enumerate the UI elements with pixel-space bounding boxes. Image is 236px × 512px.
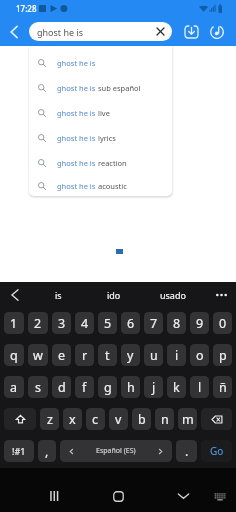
staticText: 2 xyxy=(34,315,42,332)
button[interactable]: ghost he is xyxy=(29,50,172,75)
staticText: e xyxy=(58,347,66,364)
button[interactable]: Previous suggestions xyxy=(2,282,28,307)
button[interactable]: k xyxy=(167,376,186,398)
button[interactable]: ghost he is xyxy=(29,175,172,196)
button[interactable]: i xyxy=(167,344,186,366)
button[interactable]: g xyxy=(98,376,117,398)
button[interactable]: p xyxy=(213,344,232,366)
button[interactable]: Clear xyxy=(148,22,172,41)
staticText: 5 xyxy=(104,315,112,332)
staticText: m xyxy=(182,411,194,428)
staticText: y xyxy=(127,347,134,364)
button[interactable]: !#1 xyxy=(4,440,34,462)
button[interactable]: r xyxy=(75,344,94,366)
button[interactable]: ghost he is xyxy=(29,150,172,175)
staticText: 6 xyxy=(127,315,135,332)
button[interactable]: Español (ES) xyxy=(60,440,172,462)
button[interactable]: 5 xyxy=(98,312,117,334)
staticText: s xyxy=(35,379,41,396)
button[interactable]: More options xyxy=(206,282,236,307)
staticText: lyrics xyxy=(96,133,116,143)
staticText: v xyxy=(115,411,122,428)
button[interactable]: t xyxy=(98,344,117,366)
button[interactable]: ghost he is xyxy=(29,125,172,150)
staticText: u xyxy=(150,347,158,364)
staticText: reaction xyxy=(96,158,127,168)
button[interactable]: ghost he is xyxy=(29,22,172,41)
staticText: ghost he is xyxy=(57,83,96,93)
button[interactable]: ghost he is xyxy=(29,100,172,125)
button[interactable]: h xyxy=(121,376,140,398)
staticText: o xyxy=(196,347,204,364)
button[interactable]: Download xyxy=(179,20,203,44)
staticText: ghost he is xyxy=(57,58,96,68)
button[interactable]: ñ xyxy=(213,376,232,398)
button[interactable]: q xyxy=(4,344,24,366)
staticText: 3 xyxy=(58,315,66,332)
button[interactable]: usado xyxy=(144,282,202,307)
button[interactable]: 7 xyxy=(144,312,163,334)
button[interactable]: w xyxy=(28,344,48,366)
button[interactable]: 9 xyxy=(190,312,209,334)
staticText: p xyxy=(219,347,227,364)
button[interactable]: . xyxy=(176,440,197,462)
button[interactable]: , xyxy=(38,440,56,462)
button[interactable]: Backspace xyxy=(201,408,232,430)
button[interactable]: Go xyxy=(201,440,232,462)
button[interactable]: 8 xyxy=(167,312,186,334)
button[interactable]: d xyxy=(52,376,71,398)
button[interactable]: x xyxy=(63,408,82,430)
button[interactable]: u xyxy=(144,344,163,366)
staticText: b xyxy=(138,411,146,428)
staticText: n xyxy=(161,411,169,428)
staticText: 1 xyxy=(10,315,18,332)
button[interactable]: Shift xyxy=(4,408,36,430)
staticText: ghost he is xyxy=(57,181,96,191)
button[interactable]: is xyxy=(30,282,87,307)
staticText: t xyxy=(105,347,110,364)
staticText: ghost he is xyxy=(37,26,84,38)
button[interactable]: 4 xyxy=(75,312,94,334)
staticText: c xyxy=(92,411,99,428)
button[interactable]: ghost he is xyxy=(29,75,172,100)
staticText: q xyxy=(10,347,18,364)
button[interactable]: j xyxy=(144,376,163,398)
staticText: 4 xyxy=(81,315,89,332)
staticText: i xyxy=(175,347,179,364)
button[interactable]: Music xyxy=(205,20,229,44)
button[interactable]: Recents xyxy=(41,484,65,508)
button[interactable]: Back xyxy=(2,20,26,44)
staticText: ñ xyxy=(219,379,227,396)
button[interactable]: 0 xyxy=(213,312,232,334)
button[interactable]: Hide keyboard xyxy=(171,484,195,508)
staticText: 9 xyxy=(196,315,204,332)
button[interactable]: z xyxy=(40,408,59,430)
staticText: is xyxy=(55,289,62,301)
button[interactable]: m xyxy=(178,408,197,430)
button[interactable]: c xyxy=(86,408,105,430)
staticText: h xyxy=(127,379,135,396)
staticText: g xyxy=(104,379,112,396)
staticText: ido xyxy=(107,289,121,301)
button[interactable]: 2 xyxy=(28,312,48,334)
button[interactable]: 3 xyxy=(52,312,71,334)
staticText: 17:28 xyxy=(16,3,37,14)
button[interactable]: o xyxy=(190,344,209,366)
button[interactable]: a xyxy=(4,376,24,398)
button[interactable]: 6 xyxy=(121,312,140,334)
button[interactable]: 1 xyxy=(4,312,24,334)
button[interactable]: n xyxy=(155,408,174,430)
button[interactable]: v xyxy=(109,408,128,430)
button[interactable]: f xyxy=(75,376,94,398)
button[interactable]: ido xyxy=(85,282,142,307)
staticText: Español (ES) xyxy=(96,446,136,456)
button[interactable]: e xyxy=(52,344,71,366)
button[interactable]: s xyxy=(28,376,48,398)
button[interactable]: b xyxy=(132,408,151,430)
button[interactable]: y xyxy=(121,344,140,366)
staticText: ghost he is xyxy=(57,108,96,118)
button[interactable]: Home xyxy=(106,484,130,508)
staticText: ghost he is xyxy=(57,158,96,168)
button[interactable]: l xyxy=(190,376,209,398)
button[interactable]: Change keyboard xyxy=(208,484,232,508)
